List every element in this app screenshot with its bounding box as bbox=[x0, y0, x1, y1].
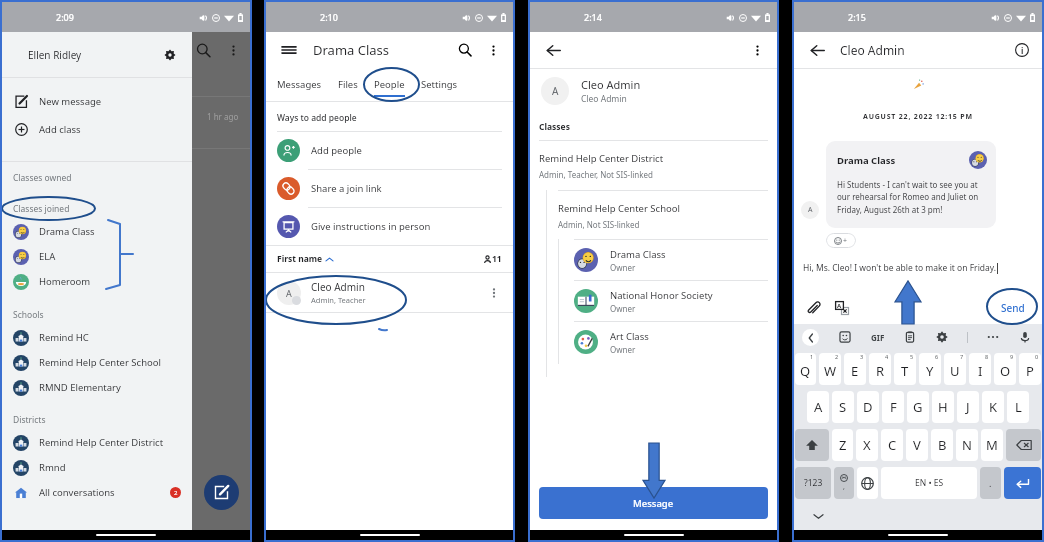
button[interactable]: Compose message bbox=[204, 475, 239, 510]
button[interactable]: ELA bbox=[2, 244, 192, 269]
staticText: N bbox=[962, 436, 972, 454]
button[interactable]: Add people bbox=[266, 132, 513, 169]
button[interactable]: Homeroom bbox=[2, 269, 192, 294]
button[interactable]: 2 bbox=[819, 353, 841, 385]
staticText: Ways to add people bbox=[277, 112, 357, 124]
button[interactable]: Translate bbox=[833, 299, 851, 317]
button[interactable]: M bbox=[981, 429, 1003, 461]
button[interactable]: People bbox=[366, 68, 413, 101]
button[interactable]: L bbox=[1007, 391, 1029, 423]
button[interactable]: Back bbox=[544, 41, 562, 59]
button[interactable]: 0 bbox=[1019, 353, 1041, 385]
staticText: Rmnd bbox=[39, 461, 66, 474]
button[interactable]: X bbox=[856, 429, 878, 461]
button[interactable]: Voice input bbox=[1018, 330, 1032, 344]
button[interactable]: Settings bbox=[413, 68, 466, 101]
staticText: T bbox=[901, 362, 909, 380]
button[interactable]: All conversations bbox=[2, 480, 192, 505]
button[interactable]: Hide keyboard bbox=[812, 510, 824, 522]
button[interactable]: 1 bbox=[795, 353, 816, 385]
button[interactable]: Art Class bbox=[574, 322, 777, 362]
button[interactable]: Back bbox=[808, 41, 826, 59]
button[interactable]: Stickers bbox=[838, 330, 852, 344]
button[interactable]: S bbox=[832, 391, 854, 423]
button[interactable]: Drama Class bbox=[574, 240, 777, 280]
button[interactable]: National Honor Society bbox=[574, 281, 777, 321]
button[interactable]: GIF bbox=[871, 332, 885, 343]
button[interactable]: Conversation info bbox=[1013, 41, 1031, 59]
button[interactable]: C bbox=[881, 429, 903, 461]
button[interactable]: More options bbox=[748, 41, 766, 59]
staticText: 11 bbox=[492, 253, 502, 265]
staticText: National Honor Society bbox=[610, 289, 713, 302]
button[interactable]: 3 bbox=[844, 353, 866, 385]
staticText: Remind Help Center School bbox=[558, 202, 680, 215]
button[interactable]: Files bbox=[330, 68, 366, 101]
button[interactable]: Member options bbox=[486, 285, 502, 301]
button[interactable]: Remind Help Center District bbox=[2, 430, 192, 455]
staticText: L bbox=[1015, 398, 1022, 416]
button[interactable]: Attach file bbox=[804, 299, 822, 317]
staticText: , bbox=[843, 482, 845, 492]
button[interactable]: 8 bbox=[969, 353, 991, 385]
staticText: D bbox=[863, 398, 873, 416]
button[interactable]: 5 bbox=[894, 353, 916, 385]
button[interactable]: Message bbox=[539, 487, 768, 519]
staticText: 7 bbox=[960, 353, 964, 360]
button[interactable]: , bbox=[834, 467, 854, 499]
staticText: M bbox=[986, 436, 998, 454]
button[interactable]: . bbox=[980, 467, 1001, 499]
button[interactable]: Add reaction bbox=[826, 233, 856, 248]
button[interactable]: Remind Help Center School bbox=[2, 350, 192, 375]
button[interactable]: 7 bbox=[944, 353, 966, 385]
button[interactable]: F bbox=[882, 391, 904, 423]
button[interactable]: D bbox=[857, 391, 879, 423]
button[interactable]: Give instructions in person bbox=[266, 208, 513, 245]
button[interactable]: Rmnd bbox=[2, 455, 192, 480]
button[interactable]: Collapse toolbar bbox=[802, 329, 819, 346]
button[interactable]: Share a join link bbox=[266, 170, 513, 207]
button[interactable]: Drama Class bbox=[2, 219, 192, 244]
button[interactable] bbox=[795, 429, 829, 461]
staticText: Remind HC bbox=[39, 331, 89, 344]
button[interactable]: Add class bbox=[2, 115, 192, 143]
staticText: Classes owned bbox=[13, 172, 72, 184]
button[interactable]: Settings bbox=[935, 330, 949, 344]
button[interactable]: Send bbox=[995, 297, 1031, 319]
button[interactable]: EN • ES bbox=[881, 467, 977, 499]
button[interactable]: Clipboard bbox=[903, 330, 917, 344]
staticText: A bbox=[552, 84, 559, 98]
staticText: . bbox=[989, 477, 992, 489]
button[interactable]: G bbox=[907, 391, 929, 423]
button[interactable]: Search bbox=[456, 41, 474, 59]
button[interactable]: Ellen Ridley bbox=[2, 32, 192, 77]
button[interactable]: K bbox=[982, 391, 1004, 423]
button[interactable]: V bbox=[906, 429, 928, 461]
button[interactable]: More bbox=[986, 330, 1000, 344]
button[interactable] bbox=[1004, 467, 1041, 499]
button[interactable]: Menu bbox=[280, 41, 298, 59]
button[interactable]: J bbox=[957, 391, 979, 423]
button[interactable]: 6 bbox=[919, 353, 941, 385]
button[interactable]: B bbox=[931, 429, 953, 461]
button[interactable]: A bbox=[266, 273, 513, 312]
button[interactable]: ?123 bbox=[795, 467, 831, 499]
button[interactable]: A bbox=[807, 391, 829, 423]
button[interactable]: Z bbox=[832, 429, 853, 461]
button[interactable] bbox=[857, 467, 878, 499]
button[interactable] bbox=[1006, 429, 1041, 461]
button[interactable]: RMND Elementary bbox=[2, 375, 192, 400]
staticText: New message bbox=[39, 95, 102, 108]
button[interactable]: 9 bbox=[994, 353, 1016, 385]
button[interactable]: New message bbox=[2, 87, 192, 115]
button[interactable]: Settings bbox=[161, 46, 179, 64]
button[interactable]: H bbox=[932, 391, 954, 423]
button[interactable]: N bbox=[956, 429, 978, 461]
button[interactable]: More options bbox=[484, 41, 502, 59]
staticText: Remind Help Center District bbox=[39, 436, 164, 449]
staticText: Add people bbox=[311, 144, 362, 157]
staticText: B bbox=[938, 436, 947, 454]
button[interactable]: Remind HC bbox=[2, 325, 192, 350]
button[interactable]: Messages bbox=[269, 68, 330, 101]
button[interactable]: 4 bbox=[869, 353, 891, 385]
